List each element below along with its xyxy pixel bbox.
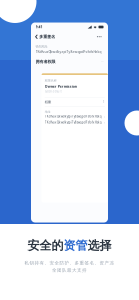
staticText: TKdfvuxQkwdkyzpiTy8zwqpdFsfofxHzkq <box>45 120 102 124</box>
button[interactable]: TKdfvuxQkwdkyzpiTy8zwqpdFsfofxHzkq <box>45 119 105 125</box>
staticText: 地址 <box>45 110 51 114</box>
button[interactable]: Back <box>35 32 55 41</box>
staticText: 拥有者权限 <box>35 59 55 64</box>
staticText: 权重 <box>45 100 51 104</box>
staticText: › <box>104 120 105 125</box>
staticText: Owner Permission <box>45 84 77 89</box>
button[interactable]: More options <box>94 34 104 40</box>
staticText: 私钥持有、安全防护、多重签名、资产冻 <box>24 260 114 266</box>
staticText: 权限名称 <box>45 79 57 82</box>
staticText: 全团队最大支持 <box>52 267 87 273</box>
staticText: 资管 <box>63 238 87 253</box>
staticText: 9:41 <box>35 25 42 29</box>
staticText: 多重签名 <box>39 34 55 39</box>
button[interactable]: 权重 <box>45 98 105 106</box>
staticText: › <box>104 114 105 119</box>
staticText: TKdfvuxQkwdkyzpiTy8zwqpdFsfofxHzkq <box>45 114 102 118</box>
staticText: TKdfvuxQkwdkyzpiTy8zwqpdFsfofxHzkq <box>35 49 101 54</box>
staticText: 选择 <box>87 238 111 253</box>
button[interactable]: TKdfvuxQkwdkyzpiTy8zwqpdFsfofxHzkq <box>45 114 105 119</box>
staticText: system-default <box>45 90 62 93</box>
staticText: 安全的 <box>27 238 63 253</box>
staticText: 1 <box>103 100 105 104</box>
staticText: 钱包地址 <box>35 44 47 48</box>
